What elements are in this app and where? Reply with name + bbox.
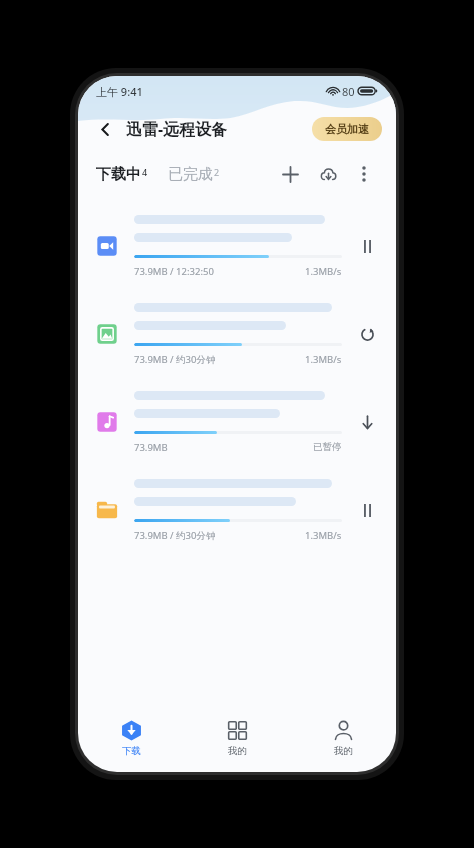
staticText: 1.3MB/s	[305, 529, 342, 542]
staticText: 下载	[122, 745, 141, 757]
staticText: 已完成	[168, 165, 213, 184]
staticText: 73.9MB / 约30分钟	[134, 353, 216, 366]
button[interactable]: 73.9MB / 约30分钟	[78, 466, 396, 554]
staticText: 会员加速	[325, 122, 369, 136]
button[interactable]: 我的	[184, 710, 290, 766]
staticText: 上午 9:41	[96, 84, 143, 99]
staticText: 我的	[228, 745, 247, 757]
staticText: 73.9MB / 约30分钟	[134, 529, 216, 542]
staticText: 4	[142, 166, 148, 178]
button[interactable]: More options	[350, 160, 378, 188]
staticText: 下载中	[96, 165, 141, 184]
button[interactable]: Pause	[352, 231, 382, 261]
staticText: 2	[214, 166, 220, 178]
button[interactable]: 已完成	[168, 165, 220, 184]
staticText: 1.3MB/s	[305, 265, 342, 278]
button[interactable]: Cloud download	[314, 160, 342, 188]
staticText: 我的	[334, 745, 353, 757]
staticText: 1.3MB/s	[305, 353, 342, 366]
button[interactable]: 73.9MB	[78, 378, 396, 466]
staticText: 已暂停	[313, 441, 342, 453]
button[interactable]: 下载中	[96, 165, 148, 184]
staticText: 迅雷-远程设备	[126, 118, 228, 140]
button[interactable]: 73.9MB / 约30分钟	[78, 290, 396, 378]
button[interactable]: Pause	[352, 495, 382, 525]
staticText: 73.9MB / 12:32:50	[134, 265, 214, 278]
button[interactable]: 73.9MB / 12:32:50	[78, 202, 396, 290]
button[interactable]: Add	[276, 160, 304, 188]
staticText: 73.9MB	[134, 441, 168, 454]
button[interactable]: 会员加速	[312, 117, 382, 141]
button[interactable]: 我的	[290, 710, 396, 766]
button[interactable]: Retry	[352, 319, 382, 349]
staticText: 80	[342, 84, 355, 99]
button[interactable]: 下载	[78, 710, 184, 766]
button[interactable]: Resume download	[352, 407, 382, 437]
button[interactable]: Back	[92, 116, 118, 142]
